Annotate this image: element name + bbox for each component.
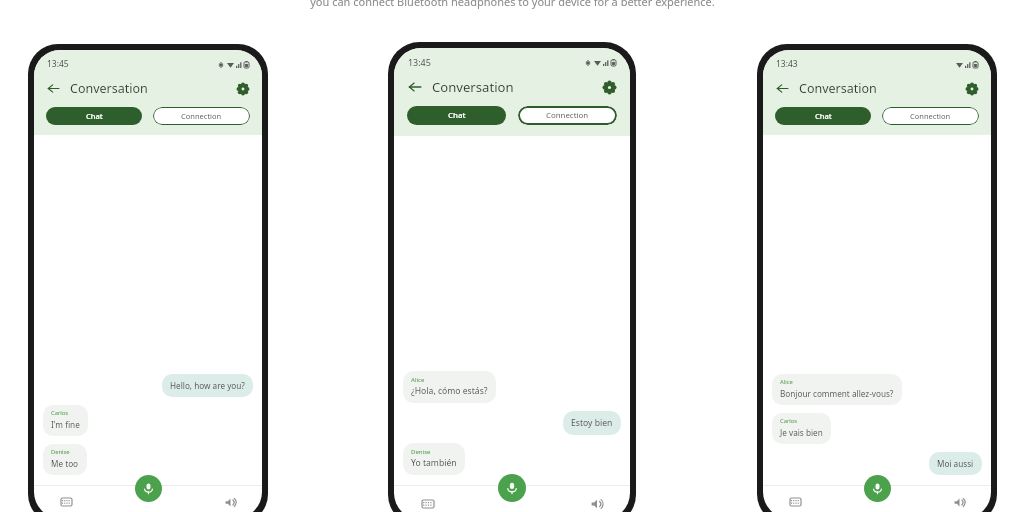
staticText: ¿Hola, cómo estás?: [411, 385, 488, 397]
staticText: Conversation: [70, 80, 148, 97]
button[interactable]: Alice: [772, 374, 902, 405]
staticText: Conversation: [799, 80, 877, 97]
button[interactable]: Moi aussi: [929, 452, 982, 475]
button[interactable]: Denise: [403, 443, 465, 475]
button[interactable]: Keyboard: [58, 494, 74, 510]
button[interactable]: Carlos: [43, 405, 88, 436]
staticText: Alice: [411, 375, 425, 383]
staticText: Conversation: [432, 78, 514, 96]
button[interactable]: Estoy bien: [563, 411, 621, 435]
button[interactable]: Speaker: [951, 494, 967, 510]
button[interactable]: Chat: [775, 107, 871, 125]
staticText: Denise: [51, 448, 70, 456]
staticText: Estoy bien: [571, 417, 613, 429]
staticText: Hello, how are you?: [170, 380, 245, 391]
button[interactable]: Microphone: [864, 475, 891, 502]
button[interactable]: Back: [44, 79, 63, 98]
staticText: 13:45: [408, 56, 431, 68]
staticText: Carlos: [51, 409, 69, 417]
button[interactable]: Speaker: [588, 495, 605, 512]
button[interactable]: Connection: [882, 107, 979, 125]
button[interactable]: Speaker: [222, 494, 238, 510]
staticText: Alice: [780, 378, 793, 386]
staticText: Connection: [546, 110, 589, 121]
staticText: 13:43: [776, 58, 798, 70]
button[interactable]: Alice: [403, 371, 496, 403]
button[interactable]: Hello, how are you?: [162, 374, 253, 397]
staticText: Chat: [86, 111, 103, 121]
button[interactable]: Denise: [43, 444, 87, 475]
staticText: Bonjour comment allez-vous?: [780, 388, 894, 399]
button[interactable]: Back: [773, 79, 792, 98]
button[interactable]: Keyboard: [419, 495, 436, 512]
staticText: Je vais bien: [780, 427, 823, 438]
button[interactable]: Connection: [153, 107, 250, 125]
button[interactable]: Back: [405, 77, 425, 97]
staticText: Me too: [51, 458, 79, 469]
button[interactable]: Settings: [233, 79, 252, 98]
button[interactable]: Chat: [46, 107, 142, 125]
button[interactable]: Keyboard: [787, 494, 803, 510]
button[interactable]: Settings: [962, 79, 981, 98]
staticText: Connection: [181, 111, 222, 121]
button[interactable]: Settings: [599, 77, 619, 97]
staticText: you can connect Bluetooth headphones to …: [310, 0, 715, 9]
staticText: Moi aussi: [937, 458, 974, 469]
staticText: Yo también: [411, 457, 457, 469]
staticText: Denise: [411, 447, 431, 455]
staticText: Connection: [910, 111, 951, 121]
staticText: I'm fine: [51, 419, 80, 430]
staticText: Chat: [448, 110, 466, 121]
staticText: Chat: [815, 111, 832, 121]
button[interactable]: Carlos: [772, 413, 831, 444]
button[interactable]: Connection: [518, 106, 617, 125]
button[interactable]: Microphone: [135, 475, 162, 502]
button[interactable]: Microphone: [498, 474, 526, 502]
button[interactable]: Chat: [407, 106, 506, 125]
staticText: 13:45: [47, 58, 69, 70]
staticText: Carlos: [780, 417, 798, 425]
